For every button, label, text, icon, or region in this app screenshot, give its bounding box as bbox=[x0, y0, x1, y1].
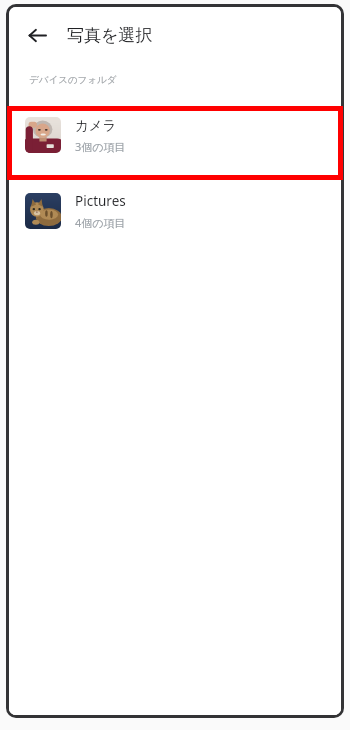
staticText: 4個の項目 bbox=[75, 215, 126, 230]
button[interactable]: Pictures bbox=[9, 173, 341, 249]
staticText: デバイスのフォルダ bbox=[29, 74, 117, 86]
staticText: 写真を選択 bbox=[67, 25, 153, 46]
button[interactable]: 戻る bbox=[19, 17, 55, 53]
button[interactable]: カメラ bbox=[9, 97, 341, 173]
staticText: 3個の項目 bbox=[75, 139, 126, 154]
staticText: Pictures bbox=[75, 192, 126, 210]
staticText: カメラ bbox=[75, 117, 117, 134]
